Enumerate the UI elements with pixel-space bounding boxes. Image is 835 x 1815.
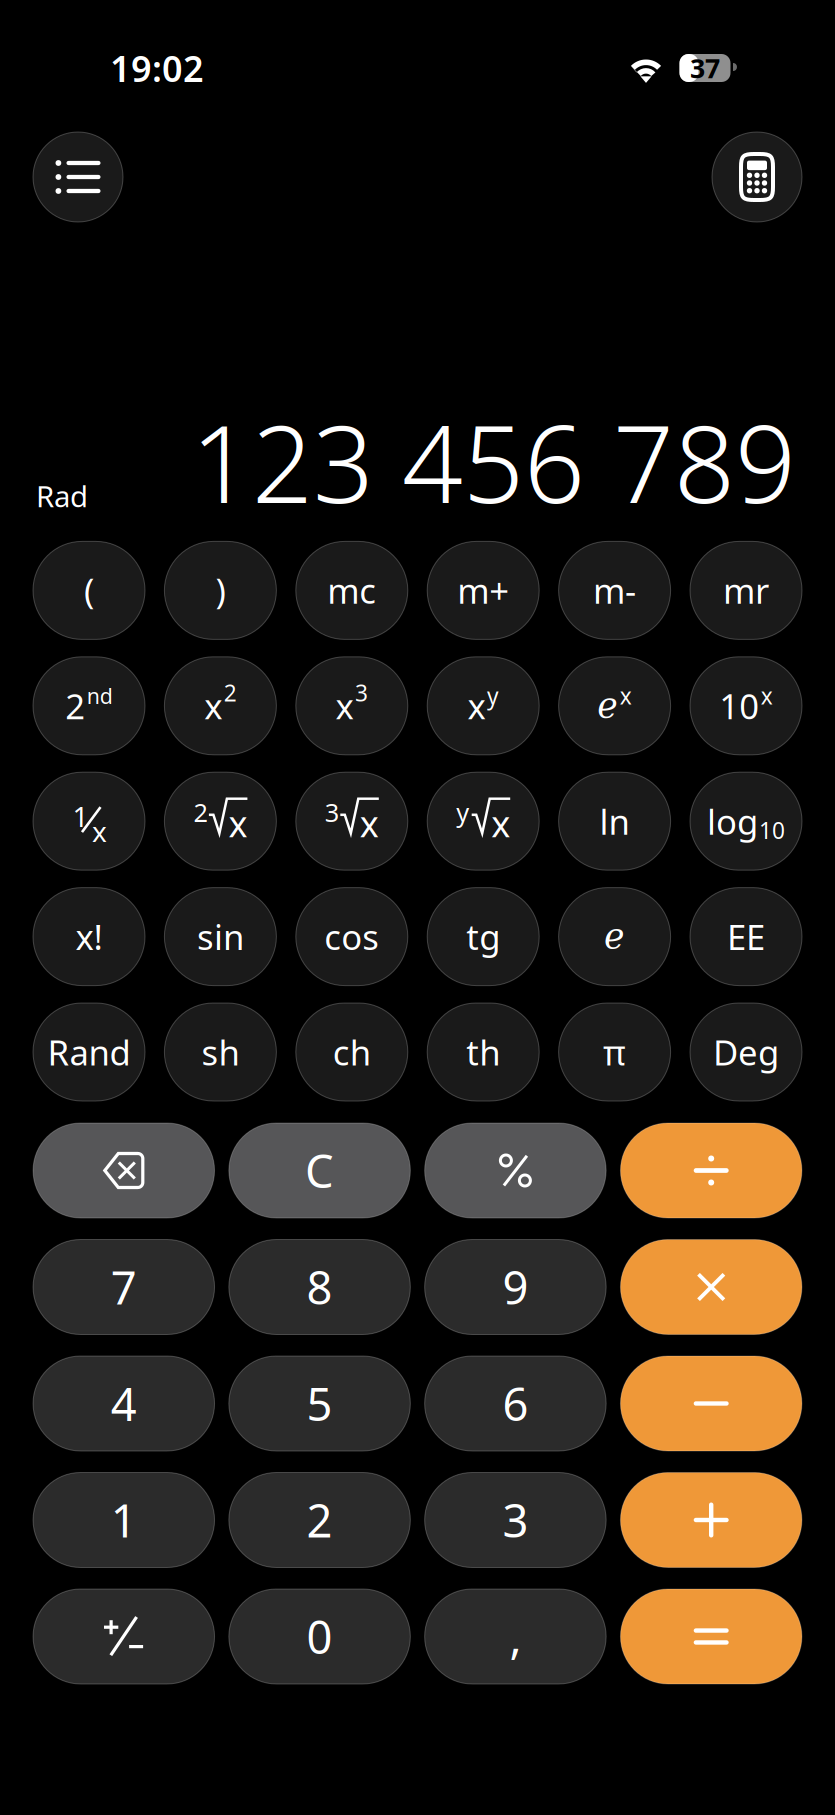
button[interactable]: cos	[296, 888, 408, 986]
staticText: Rand	[47, 1029, 130, 1075]
staticText: ch	[333, 1029, 371, 1075]
button[interactable]: 5	[229, 1356, 410, 1451]
staticText: 5	[307, 1373, 333, 1434]
staticText: m-	[593, 567, 636, 613]
button[interactable]: 8	[229, 1239, 410, 1334]
staticText: Deg	[713, 1029, 779, 1075]
button[interactable]: x	[164, 657, 276, 755]
button[interactable]: ln	[559, 772, 671, 870]
staticText: 1	[72, 798, 88, 835]
button[interactable]: ,	[425, 1589, 606, 1684]
staticText: y	[487, 681, 499, 711]
button[interactable]: 2	[229, 1472, 410, 1567]
staticText: x	[228, 799, 247, 847]
staticText: x	[467, 683, 485, 729]
staticText: 37	[690, 50, 720, 86]
button[interactable]: Rand	[33, 1003, 145, 1101]
staticText: 10	[719, 683, 759, 729]
staticText: x	[336, 683, 354, 729]
button[interactable]: 1	[33, 1472, 215, 1567]
staticText: 1	[111, 1490, 137, 1550]
button[interactable]: ch	[296, 1003, 408, 1101]
button[interactable]: sin	[164, 888, 276, 986]
button[interactable]: mc	[296, 541, 408, 639]
staticText: 3	[355, 678, 368, 708]
staticText: th	[466, 1029, 500, 1075]
staticText: 4	[111, 1373, 137, 1434]
staticText: 19:02	[110, 44, 204, 92]
staticText: ln	[600, 798, 630, 844]
button[interactable]: y	[427, 772, 539, 870]
button[interactable]: Equals	[620, 1589, 802, 1684]
staticText: x	[360, 799, 379, 847]
button[interactable]: (	[33, 541, 145, 639]
staticText: Rad	[36, 476, 88, 515]
button[interactable]: x	[427, 657, 539, 755]
button[interactable]: Delete	[33, 1123, 215, 1218]
staticText: 123 456 789	[191, 391, 796, 532]
button[interactable]: tg	[427, 888, 539, 986]
staticText: )	[215, 567, 225, 613]
button[interactable]: 0	[229, 1589, 410, 1684]
staticText: 2	[193, 795, 207, 829]
button[interactable]: π	[559, 1003, 671, 1101]
staticText: 6	[502, 1373, 528, 1434]
button[interactable]: Minus	[620, 1356, 802, 1451]
button[interactable]: mr	[690, 541, 802, 639]
button[interactable]: 4	[33, 1356, 215, 1451]
button[interactable]: EE	[690, 888, 802, 986]
staticText: ,	[509, 1606, 521, 1667]
button[interactable]: m+	[427, 541, 539, 639]
staticText: x	[620, 681, 632, 711]
button[interactable]: Plus	[620, 1472, 802, 1567]
button[interactable]: History	[33, 132, 123, 222]
staticText: 2	[307, 1490, 333, 1550]
button[interactable]: e	[559, 888, 671, 986]
staticText: e	[597, 686, 618, 726]
button[interactable]: m-	[559, 541, 671, 639]
button[interactable]: )	[164, 541, 276, 639]
button[interactable]: 2	[33, 657, 145, 755]
staticText: x	[204, 683, 222, 729]
button[interactable]: 7	[33, 1239, 215, 1334]
button[interactable]: 2	[164, 772, 276, 870]
staticText: sh	[201, 1029, 239, 1075]
button[interactable]: sh	[164, 1003, 276, 1101]
staticText: 10	[759, 815, 785, 845]
staticText: mr	[723, 567, 769, 613]
button[interactable]: x	[296, 657, 408, 755]
staticText: sin	[197, 914, 244, 960]
staticText: 3	[502, 1490, 528, 1550]
button[interactable]: x!	[33, 888, 145, 986]
staticText: x	[92, 813, 107, 850]
staticText: (	[84, 567, 94, 613]
staticText: C	[305, 1140, 334, 1201]
staticText: x!	[75, 914, 102, 960]
button[interactable]: 1	[33, 772, 145, 870]
button[interactable]: th	[427, 1003, 539, 1101]
button[interactable]: Divide	[620, 1123, 802, 1218]
button[interactable]: Deg	[690, 1003, 802, 1101]
staticText: 2	[224, 678, 237, 708]
staticText: m+	[457, 567, 509, 613]
staticText: x	[491, 799, 510, 847]
staticText: EE	[727, 914, 765, 960]
button[interactable]: Switch calculator	[712, 132, 802, 222]
button[interactable]: 9	[425, 1239, 606, 1334]
staticText: nd	[87, 682, 113, 710]
button[interactable]: Multiply	[620, 1239, 802, 1334]
button[interactable]: Percent	[425, 1123, 606, 1218]
button[interactable]: Plus minus	[33, 1589, 215, 1684]
button[interactable]: 10	[690, 657, 802, 755]
button[interactable]: log	[690, 772, 802, 870]
button[interactable]: 3	[296, 772, 408, 870]
button[interactable]: 3	[425, 1472, 606, 1567]
staticText: 7	[111, 1257, 137, 1317]
staticText: mc	[327, 567, 376, 613]
staticText: y	[456, 795, 469, 829]
staticText: e	[604, 916, 625, 957]
button[interactable]: e	[559, 657, 671, 755]
button[interactable]: 6	[425, 1356, 606, 1451]
button[interactable]: C	[229, 1123, 410, 1218]
staticText: 3	[325, 795, 339, 829]
